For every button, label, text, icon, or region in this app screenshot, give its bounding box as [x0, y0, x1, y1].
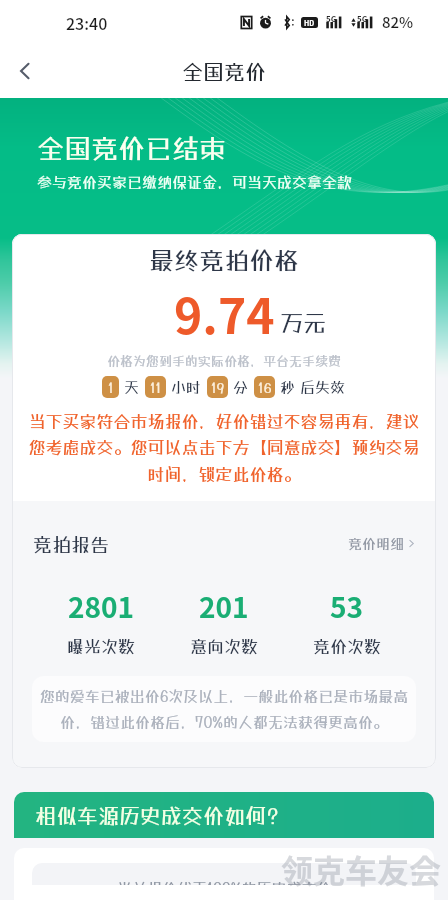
- staticText: 分: [233, 378, 249, 396]
- staticText: 53: [330, 586, 364, 627]
- staticText: 11: [150, 379, 162, 396]
- staticText: 竞拍报告: [33, 533, 110, 555]
- staticText: 曝光次数: [67, 636, 135, 656]
- staticText: HD: [304, 18, 315, 28]
- staticText: 领克车友会: [281, 846, 442, 892]
- staticText: 竞价次数: [313, 636, 381, 656]
- staticText: 19: [211, 379, 225, 396]
- staticText: 后失效: [300, 378, 346, 396]
- button[interactable]: Back: [0, 46, 50, 96]
- staticText: 全国竞价已结束: [37, 132, 226, 164]
- staticText: 全国竞价: [182, 59, 266, 84]
- staticText: 最终竞拍价格: [149, 245, 300, 274]
- staticText: 1: [108, 379, 114, 396]
- button[interactable]: 竞价明细: [344, 531, 420, 556]
- staticText: 参与竞价买家已缴纳保证金，可当天成交拿全款: [37, 173, 353, 191]
- staticText: 相似车源历史成交价如何？: [35, 803, 287, 828]
- staticText: 9.74: [174, 278, 275, 348]
- staticText: 竞价明细: [348, 535, 404, 552]
- staticText: 您的爱车已被出价6次及以上，一般此价格已是市场最高价，错过此价格后，70%的人都…: [35, 687, 413, 731]
- staticText: 当下买家符合市场报价，好价错过不容易再有，建议您考虑成交。您可以点击下方【同意成…: [24, 411, 424, 485]
- staticText: 小时: [171, 378, 202, 396]
- staticText: 意向次数: [190, 636, 258, 656]
- staticText: 5G: [326, 13, 337, 25]
- staticText: 82%: [382, 11, 414, 33]
- staticText: 5G: [357, 13, 368, 25]
- staticText: 天: [124, 378, 140, 396]
- staticText: 价格为您到手的实际价格，平台无手续费: [107, 353, 342, 368]
- staticText: 秒: [280, 378, 296, 396]
- staticText: 16: [258, 379, 272, 396]
- staticText: 当前报价优于100%的历史成交价: [117, 879, 332, 885]
- staticText: 201: [199, 586, 249, 627]
- staticText: 23:40: [66, 11, 108, 34]
- staticText: 2801: [68, 586, 135, 627]
- staticText: 万元: [280, 309, 326, 336]
